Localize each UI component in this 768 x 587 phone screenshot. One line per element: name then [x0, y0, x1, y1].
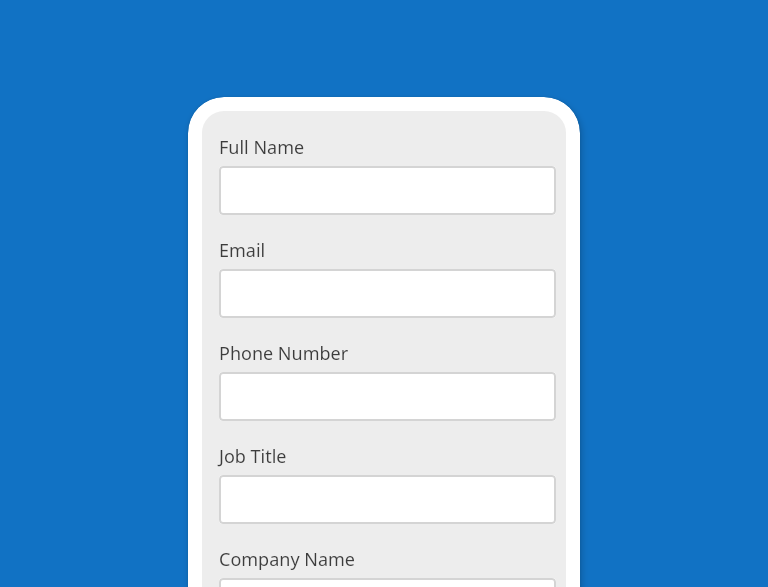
- button[interactable]: [219, 372, 556, 421]
- button[interactable]: [219, 578, 556, 587]
- button[interactable]: [219, 166, 556, 215]
- button[interactable]: [219, 269, 556, 318]
- staticText: Email: [219, 238, 266, 263]
- staticText: Full Name: [219, 135, 305, 160]
- button[interactable]: [219, 475, 556, 524]
- staticText: Phone Number: [219, 341, 349, 366]
- staticText: Job Title: [219, 444, 287, 469]
- staticText: Company Name: [219, 547, 356, 572]
